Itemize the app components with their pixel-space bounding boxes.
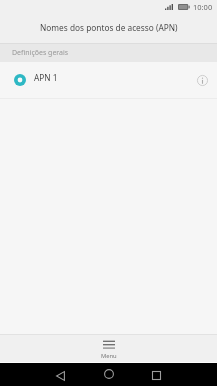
staticText: 10:00 xyxy=(193,2,213,12)
button[interactable]: APN 1 xyxy=(0,62,217,98)
button[interactable]: Informação do APN xyxy=(192,70,212,90)
staticText: Definições gerais xyxy=(12,48,69,58)
button[interactable]: Menu xyxy=(0,335,217,362)
button[interactable]: Back xyxy=(48,365,72,386)
button[interactable]: Home xyxy=(97,363,121,385)
button[interactable]: Recents xyxy=(144,364,168,386)
staticText: APN 1 xyxy=(34,72,58,83)
staticText: Menu xyxy=(101,352,117,360)
staticText: Nomes dos pontos de acesso (APN) xyxy=(40,22,178,33)
